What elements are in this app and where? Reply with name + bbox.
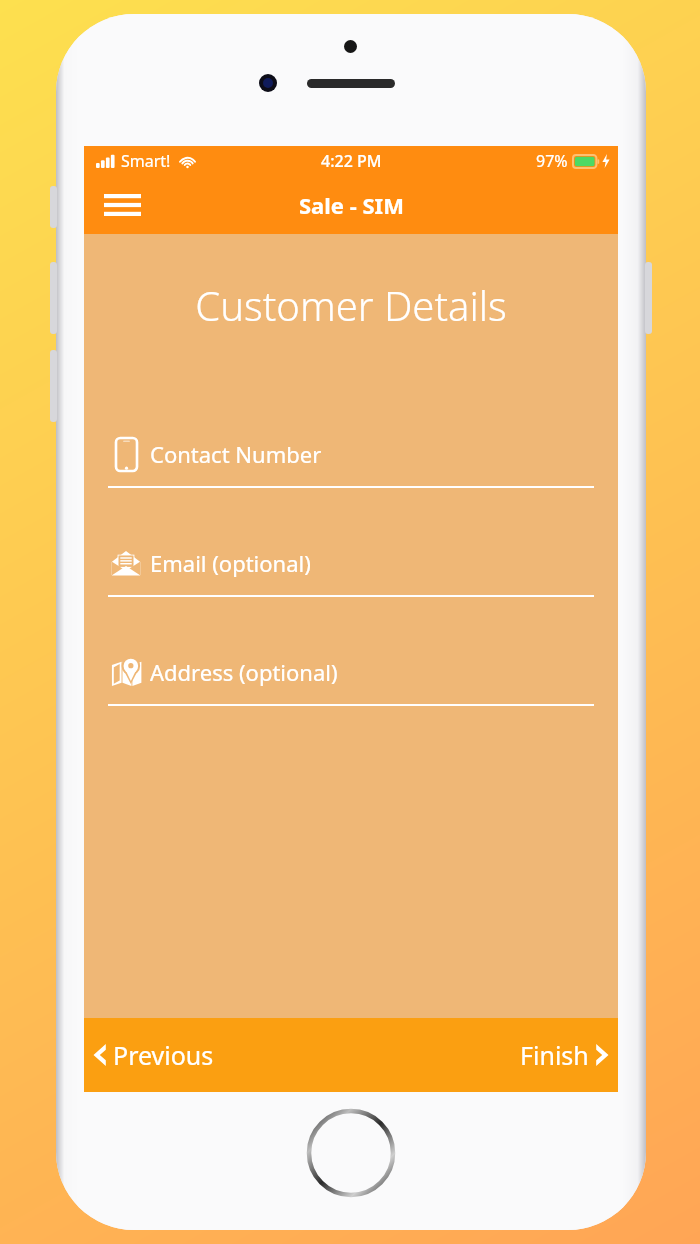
staticText: Address (optional) <box>150 657 338 687</box>
staticText: Sale - SIM <box>299 190 404 220</box>
button[interactable]: Finish <box>520 1038 610 1072</box>
staticText: Smart! <box>121 150 171 172</box>
staticText: Previous <box>113 1038 214 1072</box>
staticText: Finish <box>520 1038 589 1072</box>
button[interactable]: Open navigation menu <box>100 187 144 223</box>
staticText: Contact Number <box>150 439 322 469</box>
staticText: Customer Details <box>84 278 618 332</box>
button[interactable]: Previous <box>92 1038 214 1072</box>
button[interactable]: Email (optional) <box>108 545 594 597</box>
button[interactable]: Address (optional) <box>108 654 594 706</box>
staticText: 97% <box>536 150 568 172</box>
staticText: Email (optional) <box>150 548 311 578</box>
staticText: 4:22 PM <box>321 150 382 172</box>
button[interactable]: Contact Number <box>108 436 594 488</box>
